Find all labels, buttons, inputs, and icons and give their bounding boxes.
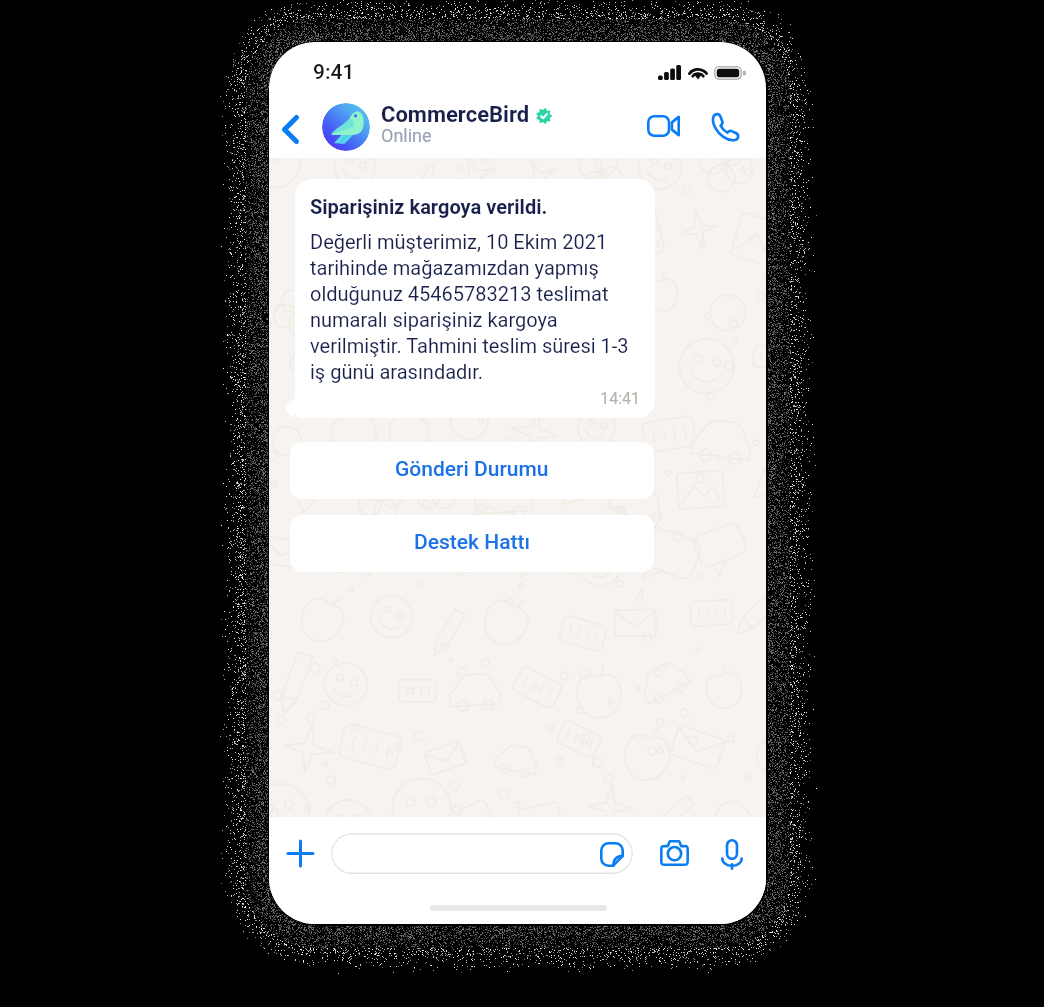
- staticText: 14:41: [310, 389, 640, 408]
- button[interactable]: Voice message: [710, 829, 753, 879]
- button[interactable]: Video call: [636, 102, 690, 150]
- button[interactable]: Call: [698, 101, 752, 151]
- staticText: 9:41: [313, 60, 355, 85]
- button[interactable]: Stickers: [594, 836, 630, 872]
- staticText: Destek Hattı: [414, 530, 531, 555]
- staticText: Online: [381, 125, 432, 146]
- staticText: CommerceBird: [381, 102, 530, 128]
- button[interactable]: Attach: [275, 828, 326, 879]
- button[interactable]: [331, 833, 633, 874]
- button[interactable]: Camera: [652, 832, 697, 874]
- button[interactable]: Gönderi Durumu: [290, 442, 654, 499]
- button[interactable]: Destek Hattı: [290, 515, 654, 572]
- button[interactable]: Back: [269, 99, 315, 159]
- staticText: Siparişiniz kargoya verildi.: [310, 195, 548, 218]
- staticText: Gönderi Durumu: [395, 457, 549, 482]
- staticText: Değerli müşterimiz, 10 Ekim 2021 tarihin…: [310, 230, 640, 383]
